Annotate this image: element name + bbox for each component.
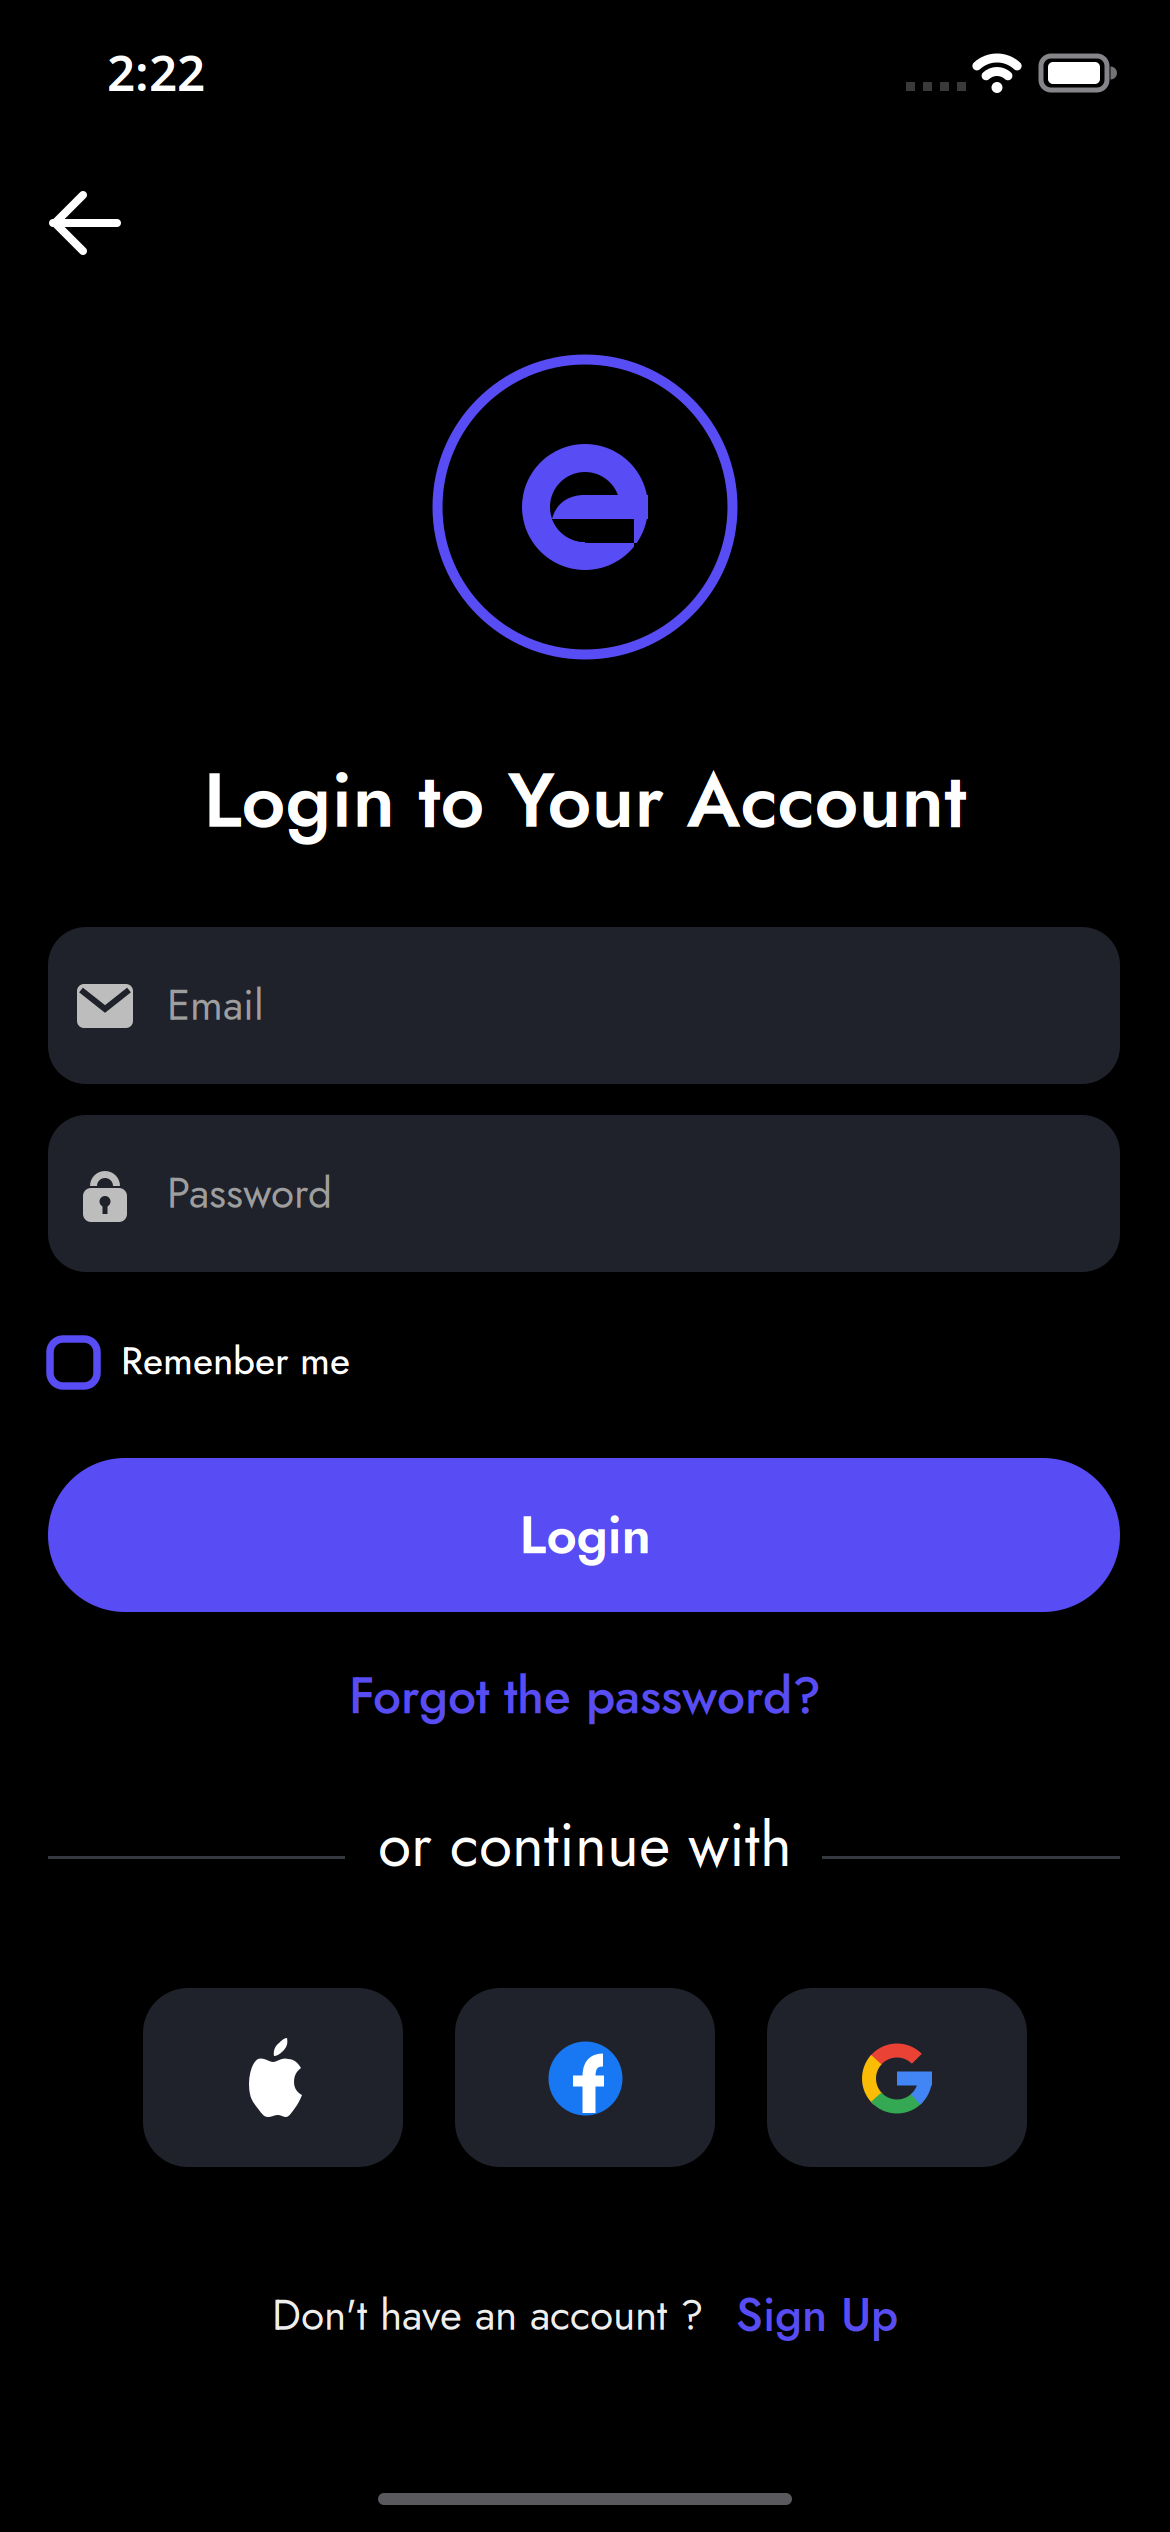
staticText: Forgot the password? xyxy=(349,1660,821,1732)
staticText: or continue with xyxy=(378,1801,792,1889)
staticText: Email xyxy=(167,975,264,1035)
staticText: Login to Your Account xyxy=(203,744,966,856)
staticText: Password xyxy=(167,1163,332,1223)
staticText: Login xyxy=(519,1497,650,1573)
staticText: Sign Up xyxy=(736,2282,898,2348)
staticText: Remenber me xyxy=(121,1333,350,1388)
staticText: 2:22 xyxy=(107,39,205,104)
staticText: Don't have an account ? xyxy=(272,2284,704,2346)
